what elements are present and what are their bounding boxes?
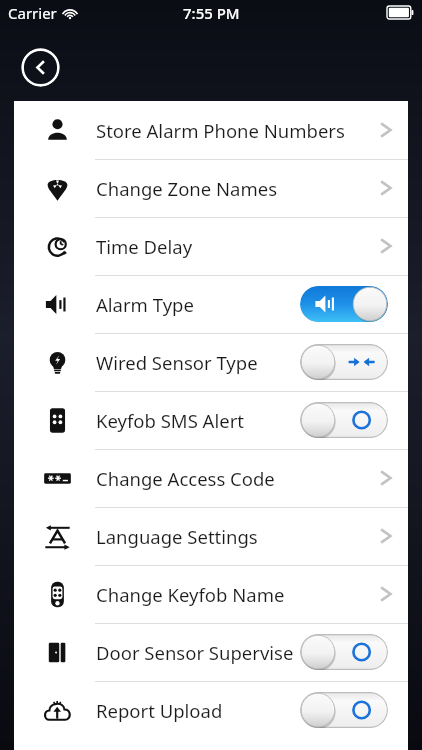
- button[interactable]: Change Keyfob Name: [14, 565, 408, 623]
- button[interactable]: Keyfob SMS Alert toggle: [300, 402, 388, 438]
- staticText: 7:55 PM: [183, 3, 240, 23]
- staticText: Keyfob SMS Alert: [96, 408, 244, 433]
- staticText: Change Keyfob Name: [96, 582, 285, 607]
- staticText: Store Alarm Phone Numbers: [96, 118, 345, 143]
- staticText: Alarm Type: [96, 292, 194, 317]
- staticText: Time Delay: [96, 234, 193, 259]
- staticText: Wired Sensor Type: [96, 350, 258, 375]
- button[interactable]: Door Sensor Supervise toggle: [300, 634, 388, 670]
- button[interactable]: Back: [21, 48, 60, 87]
- button[interactable]: Keyfob SMS Alert: [14, 391, 408, 449]
- button[interactable]: Report Upload toggle: [300, 692, 388, 728]
- button[interactable]: Language Settings: [14, 507, 408, 565]
- button[interactable]: Time Delay: [14, 217, 408, 275]
- button[interactable]: Change Access Code: [14, 449, 408, 507]
- staticText: Report Upload: [96, 698, 223, 723]
- button[interactable]: Store Alarm Phone Numbers: [14, 101, 408, 159]
- button[interactable]: Alarm Type toggle: [300, 286, 388, 322]
- staticText: Door Sensor Supervise: [96, 640, 294, 665]
- staticText: Language Settings: [96, 524, 258, 549]
- staticText: Change Access Code: [96, 466, 275, 491]
- button[interactable]: Wired Sensor Type toggle: [300, 344, 388, 380]
- button[interactable]: Change Zone Names: [14, 159, 408, 217]
- button[interactable]: Door Sensor Supervise: [14, 623, 408, 681]
- staticText: Carrier: [8, 3, 57, 23]
- button[interactable]: Report Upload: [14, 681, 408, 739]
- staticText: Change Zone Names: [96, 176, 278, 201]
- button[interactable]: Wired Sensor Type: [14, 333, 408, 391]
- button[interactable]: Alarm Type: [14, 275, 408, 333]
